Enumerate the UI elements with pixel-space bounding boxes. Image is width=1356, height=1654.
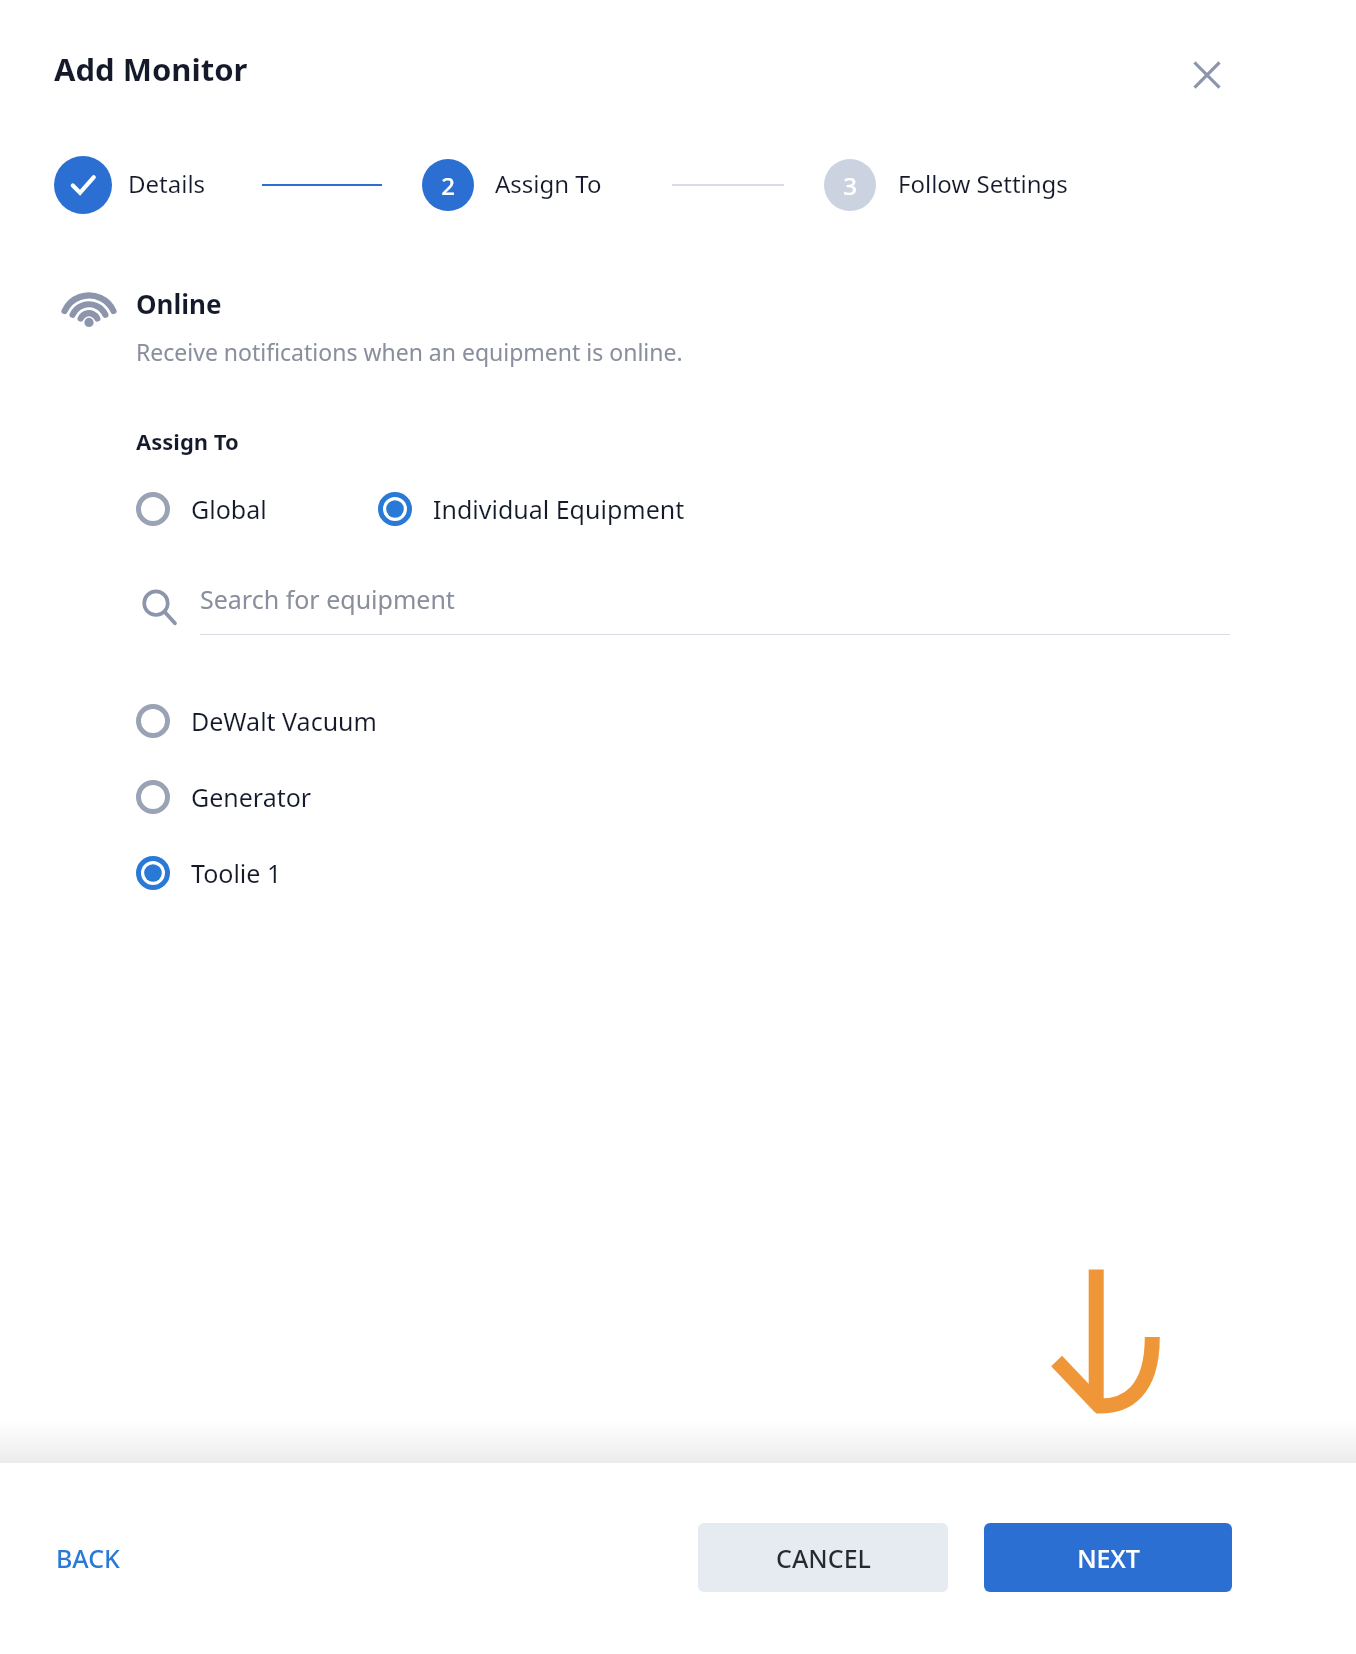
button[interactable]: NEXT <box>984 1523 1232 1592</box>
button[interactable]: DeWalt Vacuum <box>136 698 377 744</box>
button[interactable]: Search for equipment <box>200 560 1230 638</box>
button[interactable]: Follow Settings <box>898 167 1068 200</box>
staticText: Generator <box>191 780 312 814</box>
button[interactable]: Individual Equipment <box>378 486 685 532</box>
staticText: Toolie 1 <box>191 856 282 890</box>
staticText: DeWalt Vacuum <box>191 704 377 738</box>
staticText: CANCEL <box>776 1541 871 1575</box>
button[interactable]: Details step completed <box>54 156 112 214</box>
staticText: 3 <box>843 169 857 202</box>
staticText: Global <box>191 492 267 526</box>
staticText: Assign To <box>136 426 239 456</box>
staticText: Individual Equipment <box>433 492 685 526</box>
button[interactable]: 3 <box>824 159 876 211</box>
button[interactable]: Close <box>1180 48 1234 102</box>
button[interactable]: 2 <box>422 159 474 211</box>
button[interactable]: Details <box>128 167 206 200</box>
button[interactable]: Assign To <box>495 167 602 200</box>
staticText: BACK <box>56 1541 120 1575</box>
staticText: Search for equipment <box>200 582 455 616</box>
staticText: Online <box>136 286 222 321</box>
button[interactable]: Global <box>136 486 267 532</box>
staticText: Receive notifications when an equipment … <box>136 336 683 367</box>
staticText: Assign To <box>495 167 602 200</box>
staticText: Follow Settings <box>898 167 1068 200</box>
staticText: NEXT <box>1077 1541 1140 1575</box>
staticText: Details <box>128 167 206 200</box>
staticText: Add Monitor <box>54 48 248 90</box>
button[interactable]: BACK <box>40 1528 136 1588</box>
button[interactable]: Toolie 1 <box>136 850 282 896</box>
staticText: 2 <box>441 169 455 202</box>
button[interactable]: CANCEL <box>698 1523 948 1592</box>
button[interactable]: Generator <box>136 774 312 820</box>
